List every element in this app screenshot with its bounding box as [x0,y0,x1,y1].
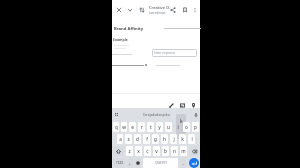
button[interactable]: Undo and redo [136,4,147,15]
button[interactable]: Voice input [193,112,199,118]
button[interactable]: q [113,122,119,132]
button[interactable]: Insert image [177,100,187,110]
staticText: o [185,124,188,130]
staticText: Last edit was seen [149,11,171,15]
button[interactable]: , [127,158,133,168]
button[interactable]: Enter [189,158,199,168]
button[interactable]: b [162,146,169,156]
button[interactable]: m [180,146,187,156]
button[interactable]: Collapse [124,4,135,15]
button[interactable]: Shift [113,146,124,156]
staticText: h [163,136,166,142]
staticText: Brand Affinity [114,26,144,32]
staticText: b [164,148,167,154]
staticText: Creative D. [149,5,171,11]
button[interactable]: a [117,134,123,144]
button[interactable]: e [129,122,136,132]
staticText: Enter response [154,51,176,55]
staticText: v [155,148,158,154]
button[interactable]: j [170,134,177,144]
staticText: e [131,124,134,130]
button[interactable]: g [152,134,159,144]
button[interactable]: d [134,134,141,144]
staticText: i [177,124,179,130]
button[interactable]: u [165,122,172,132]
button[interactable]: Close [113,4,124,15]
button[interactable]: z [126,146,133,156]
button[interactable]: Bookmark [179,4,190,15]
button[interactable]: f [143,134,150,144]
button[interactable]: Change language [135,158,141,168]
button[interactable]: i [174,122,181,132]
staticText: y [158,124,161,130]
button[interactable]: Backspace [189,146,199,156]
button[interactable]: ?123 [113,158,125,168]
staticText: l [191,136,193,142]
staticText: . [182,160,184,166]
button[interactable]: s [125,134,132,144]
staticText: a [119,136,122,142]
staticText: q [115,124,118,130]
staticText: , [129,160,131,166]
staticText: Geojakokosjoko [143,112,170,117]
staticText: k [180,118,183,124]
staticText: m [181,148,186,154]
button[interactable]: Keyboard toolbar [114,112,119,117]
button[interactable]: k [179,134,186,144]
button[interactable]: x [135,146,142,156]
staticText: f [146,136,148,142]
staticText: x [137,148,140,154]
staticText: r [141,124,143,130]
staticText: t [150,124,152,130]
button[interactable]: Location [188,100,198,110]
button[interactable]: n [171,146,178,156]
staticText: k [181,136,184,142]
button[interactable]: More options [189,4,200,15]
button[interactable]: l [188,134,195,144]
staticText: z [128,148,131,154]
button[interactable]: v [153,146,160,156]
staticText: p [194,124,197,130]
staticText: n [173,148,176,154]
button[interactable]: h [161,134,168,144]
staticText: j [173,136,175,142]
button[interactable]: p [192,122,199,132]
button[interactable]: w [121,122,127,132]
staticText: s [127,136,130,142]
staticText: g [154,136,157,142]
button[interactable]: Enter response [152,49,197,57]
staticText: Example [113,37,128,42]
button[interactable]: . [180,158,186,168]
button[interactable]: t [147,122,154,132]
button[interactable]: y [156,122,163,132]
staticText: QWERTY [155,161,167,165]
button[interactable]: r [138,122,145,132]
button[interactable]: c [144,146,151,156]
button[interactable]: QWERTY [143,158,178,168]
staticText: d [136,136,139,142]
staticText: ?123 [116,161,123,165]
staticText: w [122,124,126,130]
button[interactable]: Share [167,4,178,15]
button[interactable]: o [183,122,190,132]
staticText: u [167,124,170,130]
staticText: c [146,148,149,154]
button[interactable]: Format text [166,100,176,110]
